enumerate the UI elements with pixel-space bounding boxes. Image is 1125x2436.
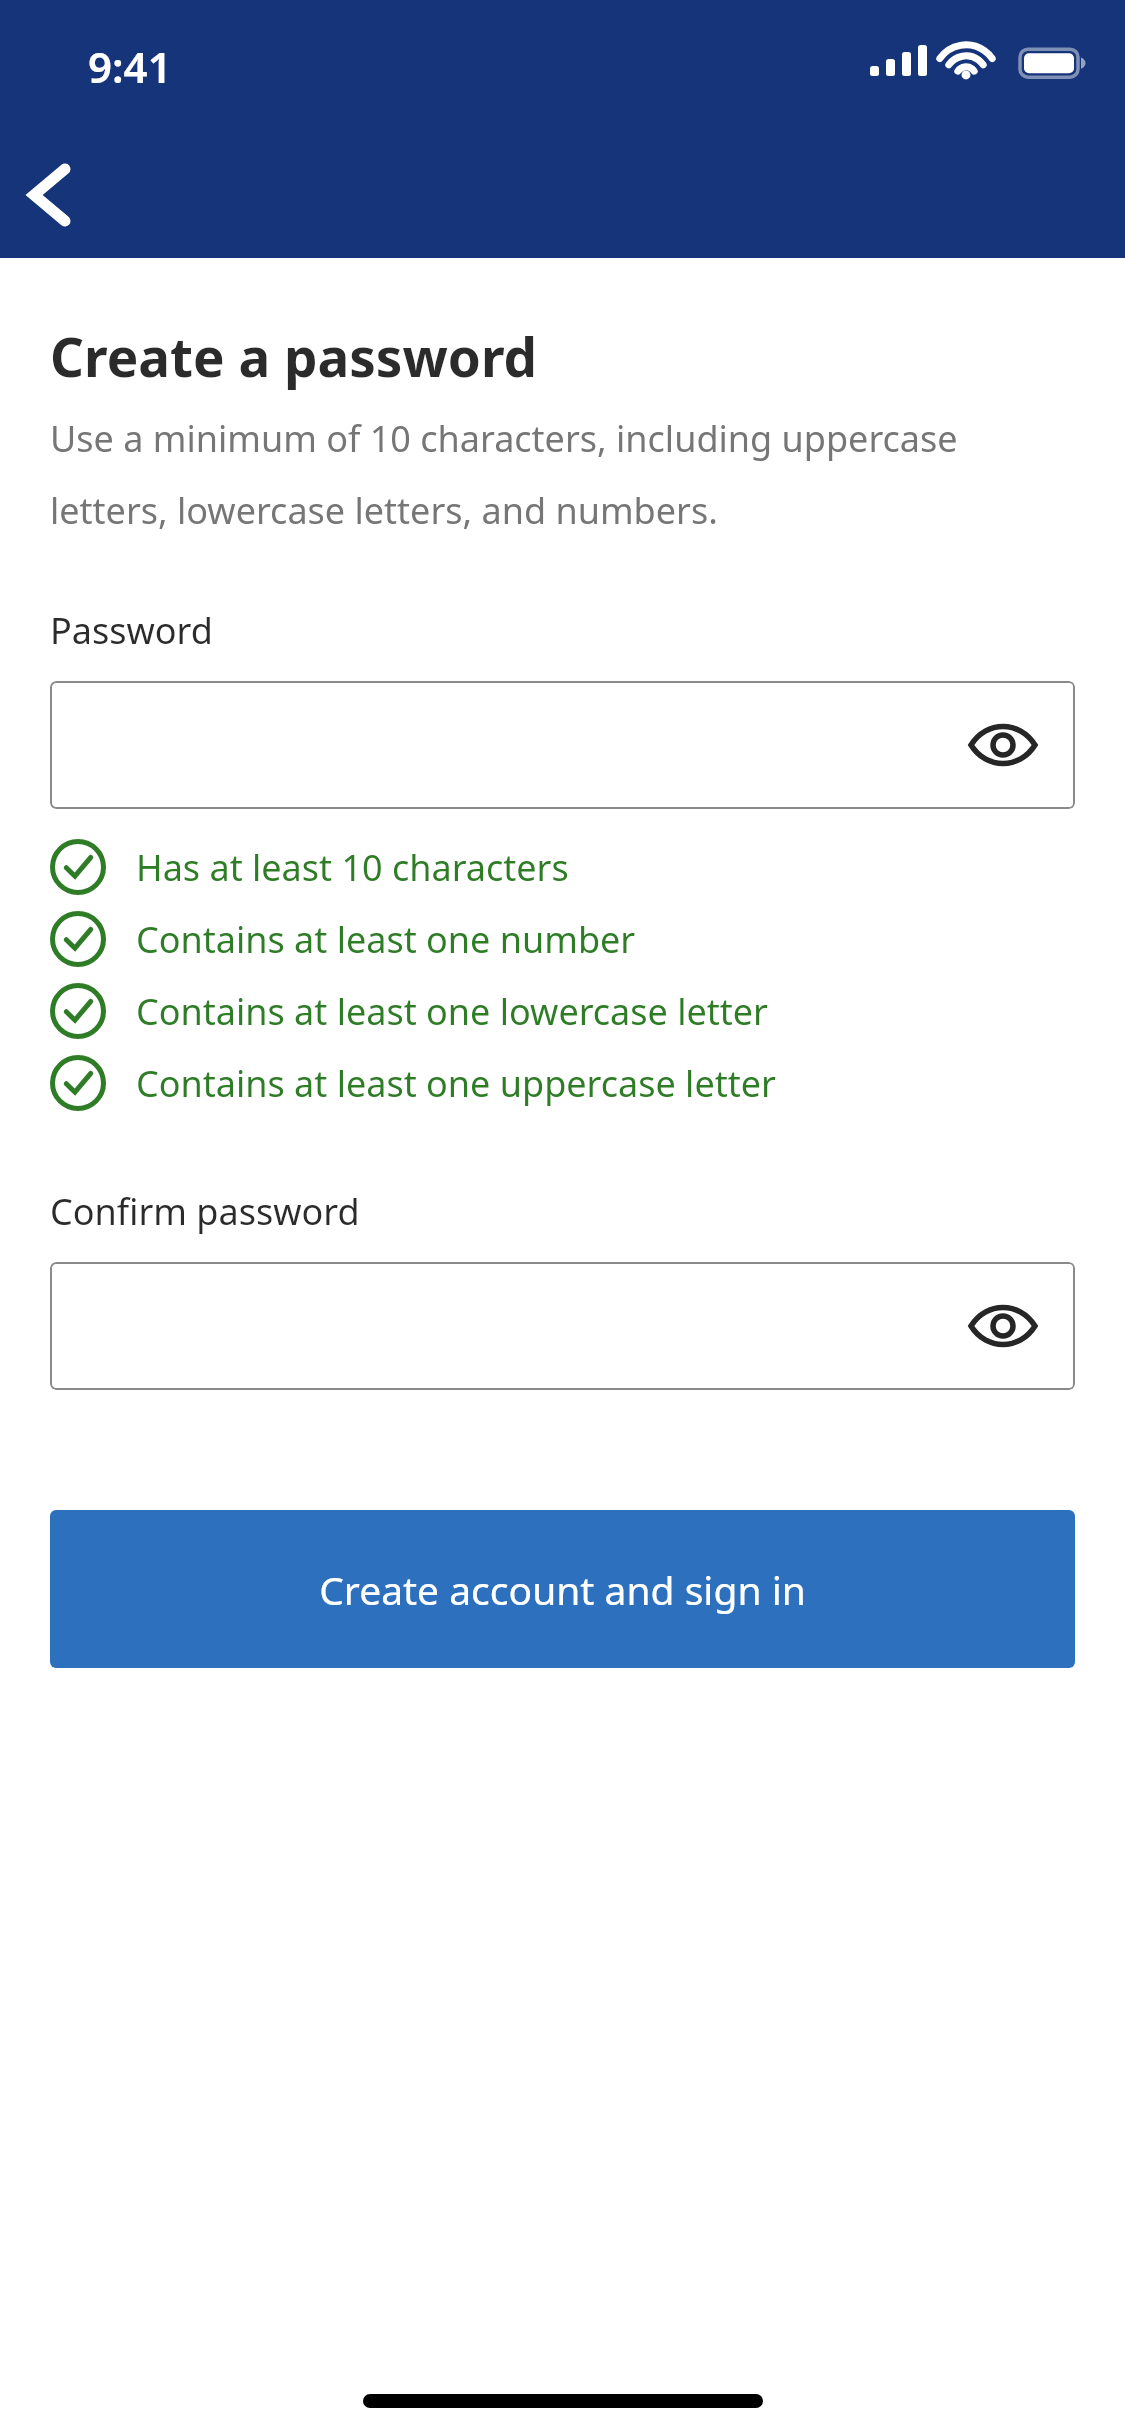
button[interactable]: Contains at least one uppercase letter [50,1047,1075,1119]
button[interactable]: Show password [50,1262,1075,1390]
staticText: Has at least 10 characters [136,843,569,892]
button[interactable]: Show password [963,1286,1043,1366]
button[interactable]: Show password [50,681,1075,809]
button[interactable]: Contains at least one lowercase letter [50,975,1075,1047]
staticText: Contains at least one uppercase letter [136,1059,776,1108]
staticText: Use a minimum of 10 characters, includin… [50,414,1075,534]
staticText: Create a password [50,320,538,392]
staticText: Create account and sign in [319,1563,806,1616]
button[interactable]: Create account and sign in [50,1510,1075,1668]
staticText: Confirm password [50,1187,360,1236]
button[interactable]: Contains at least one number [50,903,1075,975]
staticText: Contains at least one lowercase letter [136,987,768,1036]
staticText: Contains at least one number [136,915,636,964]
staticText: Password [50,606,213,655]
button[interactable]: Back [0,140,110,250]
staticText: 9:41 [88,38,172,95]
button[interactable]: Has at least 10 characters [50,831,1075,903]
button[interactable]: Show password [963,705,1043,785]
